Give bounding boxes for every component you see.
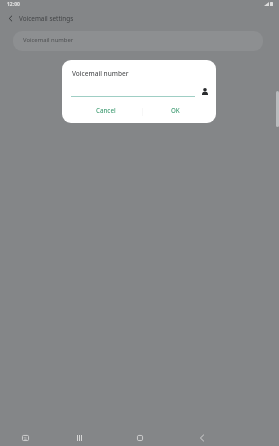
staticText: Voicemail number: [23, 36, 74, 44]
button[interactable]: Home: [128, 427, 152, 446]
button[interactable]: Cancel: [92, 103, 120, 117]
button[interactable]: Recent apps: [67, 427, 91, 446]
staticText: OK: [171, 106, 180, 114]
staticText: Cancel: [96, 106, 116, 114]
staticText: 12:00: [7, 1, 20, 8]
staticText: Voicemail settings: [19, 14, 74, 23]
button[interactable]: Hide keyboard: [13, 427, 37, 446]
button[interactable]: OK: [162, 103, 188, 117]
button[interactable]: Navigate up: [2, 11, 19, 25]
staticText: Voicemail number: [72, 69, 129, 78]
button[interactable]: Choose from contacts: [198, 84, 212, 98]
button[interactable]: Voicemail number: [13, 31, 263, 51]
button[interactable]: Back: [190, 427, 214, 446]
